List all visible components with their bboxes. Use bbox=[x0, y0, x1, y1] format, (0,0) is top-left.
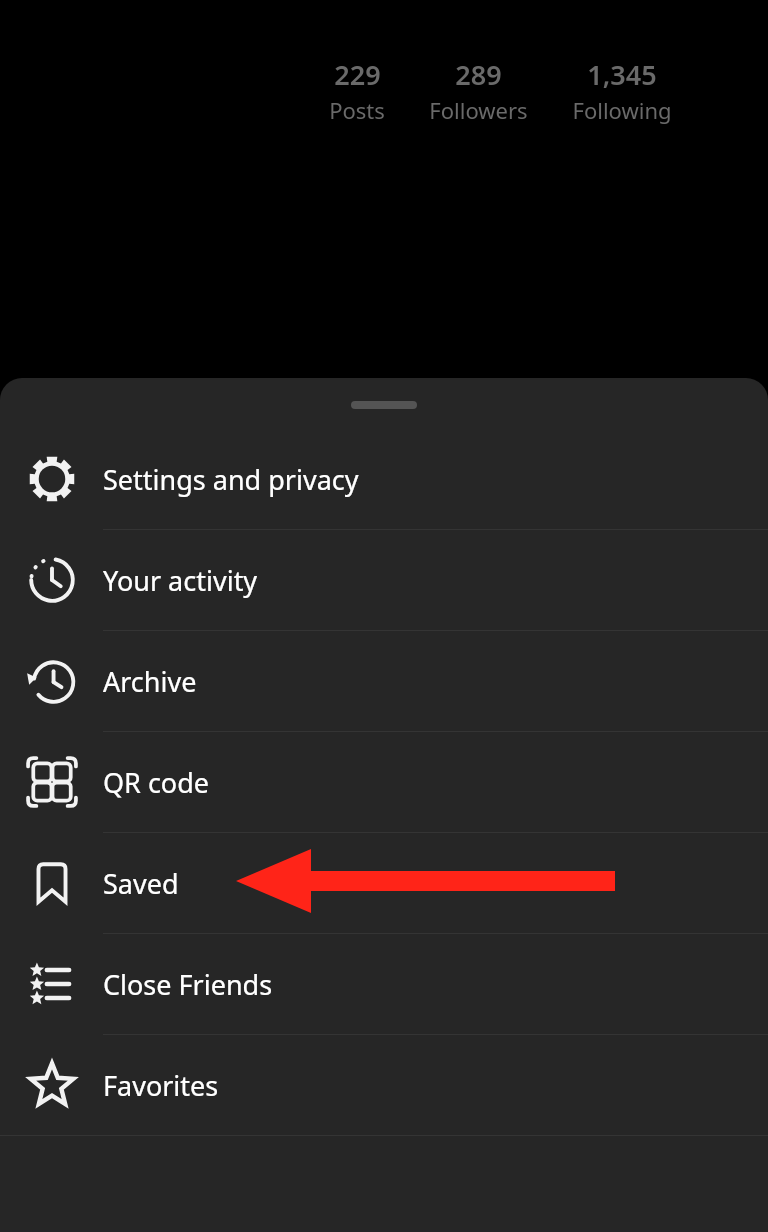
staticText: 289 bbox=[455, 56, 502, 93]
staticText: 1,345 bbox=[587, 56, 657, 93]
staticText: Settings and privacy bbox=[103, 461, 359, 498]
button[interactable]: Favorites bbox=[0, 1035, 768, 1135]
button[interactable]: QR code bbox=[0, 732, 768, 832]
button[interactable]: Archive bbox=[0, 631, 768, 731]
staticText: Following bbox=[572, 95, 672, 125]
staticText: Saved bbox=[103, 865, 179, 902]
staticText: Your activity bbox=[103, 562, 258, 599]
button[interactable]: Settings and privacy bbox=[0, 429, 768, 529]
staticText: Followers bbox=[429, 95, 528, 125]
staticText: Archive bbox=[103, 663, 197, 700]
button[interactable]: Close Friends bbox=[0, 934, 768, 1034]
staticText: 229 bbox=[334, 56, 381, 93]
staticText: Close Friends bbox=[103, 966, 273, 1003]
staticText: QR code bbox=[103, 764, 210, 801]
staticText: Posts bbox=[329, 95, 385, 125]
button[interactable]: Saved bbox=[0, 833, 768, 933]
staticText: Favorites bbox=[103, 1067, 219, 1104]
button[interactable]: Your activity bbox=[0, 530, 768, 630]
